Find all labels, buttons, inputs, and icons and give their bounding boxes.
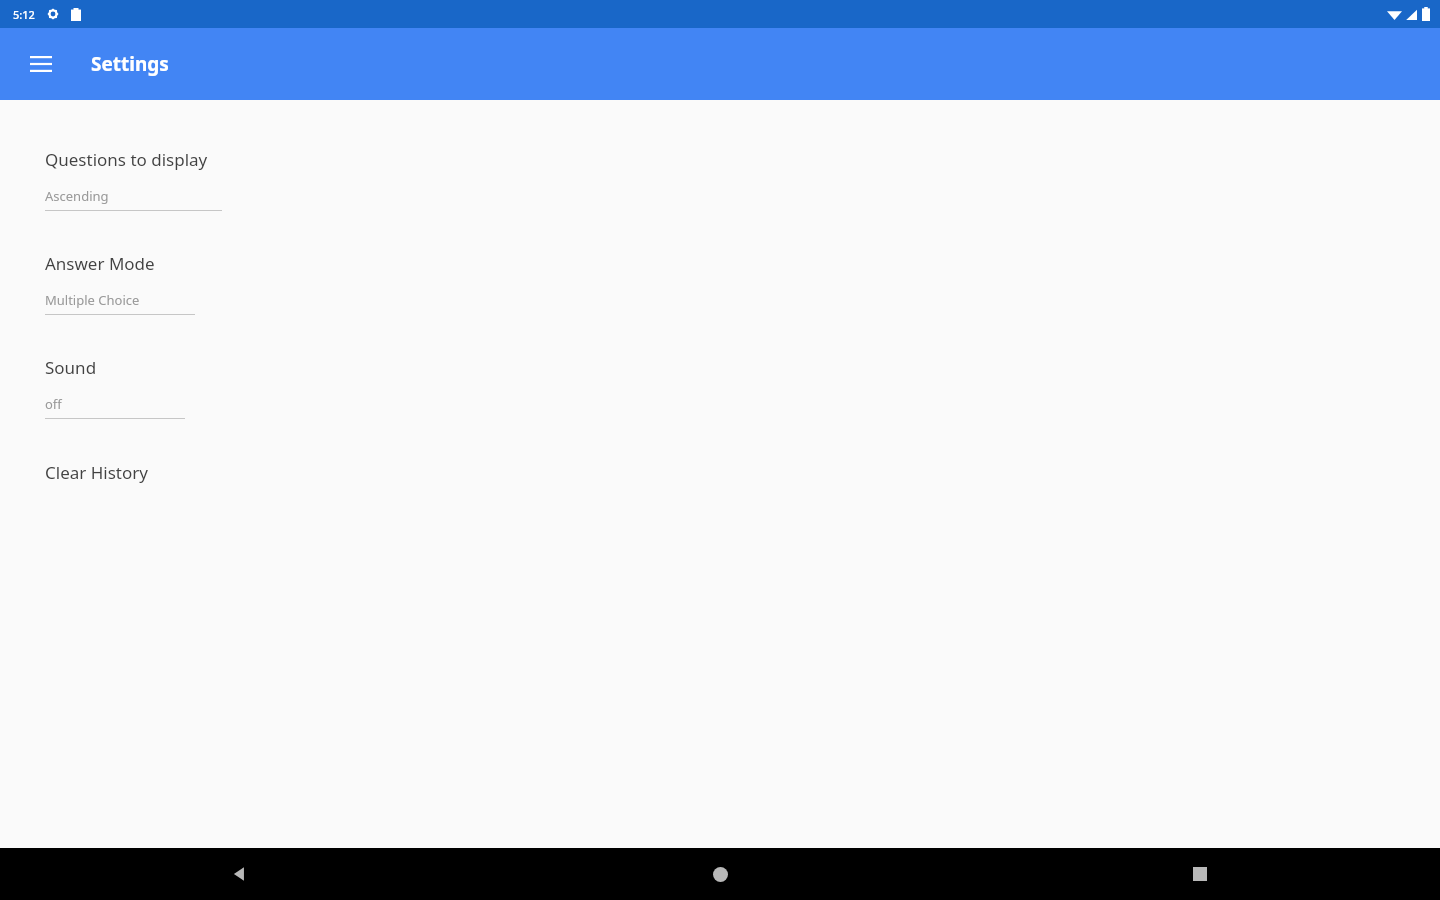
- button[interactable]: Sound: [0, 356, 1440, 419]
- staticText: Settings: [91, 51, 169, 77]
- staticText: Sound: [45, 356, 97, 379]
- staticText: off: [45, 395, 62, 413]
- button[interactable]: Recent apps: [960, 848, 1440, 900]
- staticText: Ascending: [45, 187, 109, 205]
- button[interactable]: Clear History: [0, 457, 1440, 492]
- button[interactable]: Open navigation menu: [18, 41, 64, 87]
- staticText: Clear History: [45, 461, 148, 484]
- button[interactable]: Home: [480, 848, 960, 900]
- button[interactable]: Questions to display: [0, 148, 1440, 211]
- staticText: 5:12: [13, 7, 35, 22]
- staticText: Answer Mode: [45, 252, 155, 275]
- button[interactable]: Back: [0, 848, 480, 900]
- button[interactable]: Answer Mode: [0, 252, 1440, 315]
- staticText: Multiple Choice: [45, 291, 140, 309]
- staticText: Questions to display: [45, 148, 208, 171]
